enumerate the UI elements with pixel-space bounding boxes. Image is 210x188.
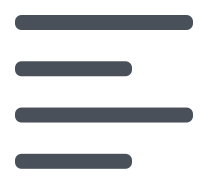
button[interactable]: Align left bbox=[0, 0, 210, 188]
